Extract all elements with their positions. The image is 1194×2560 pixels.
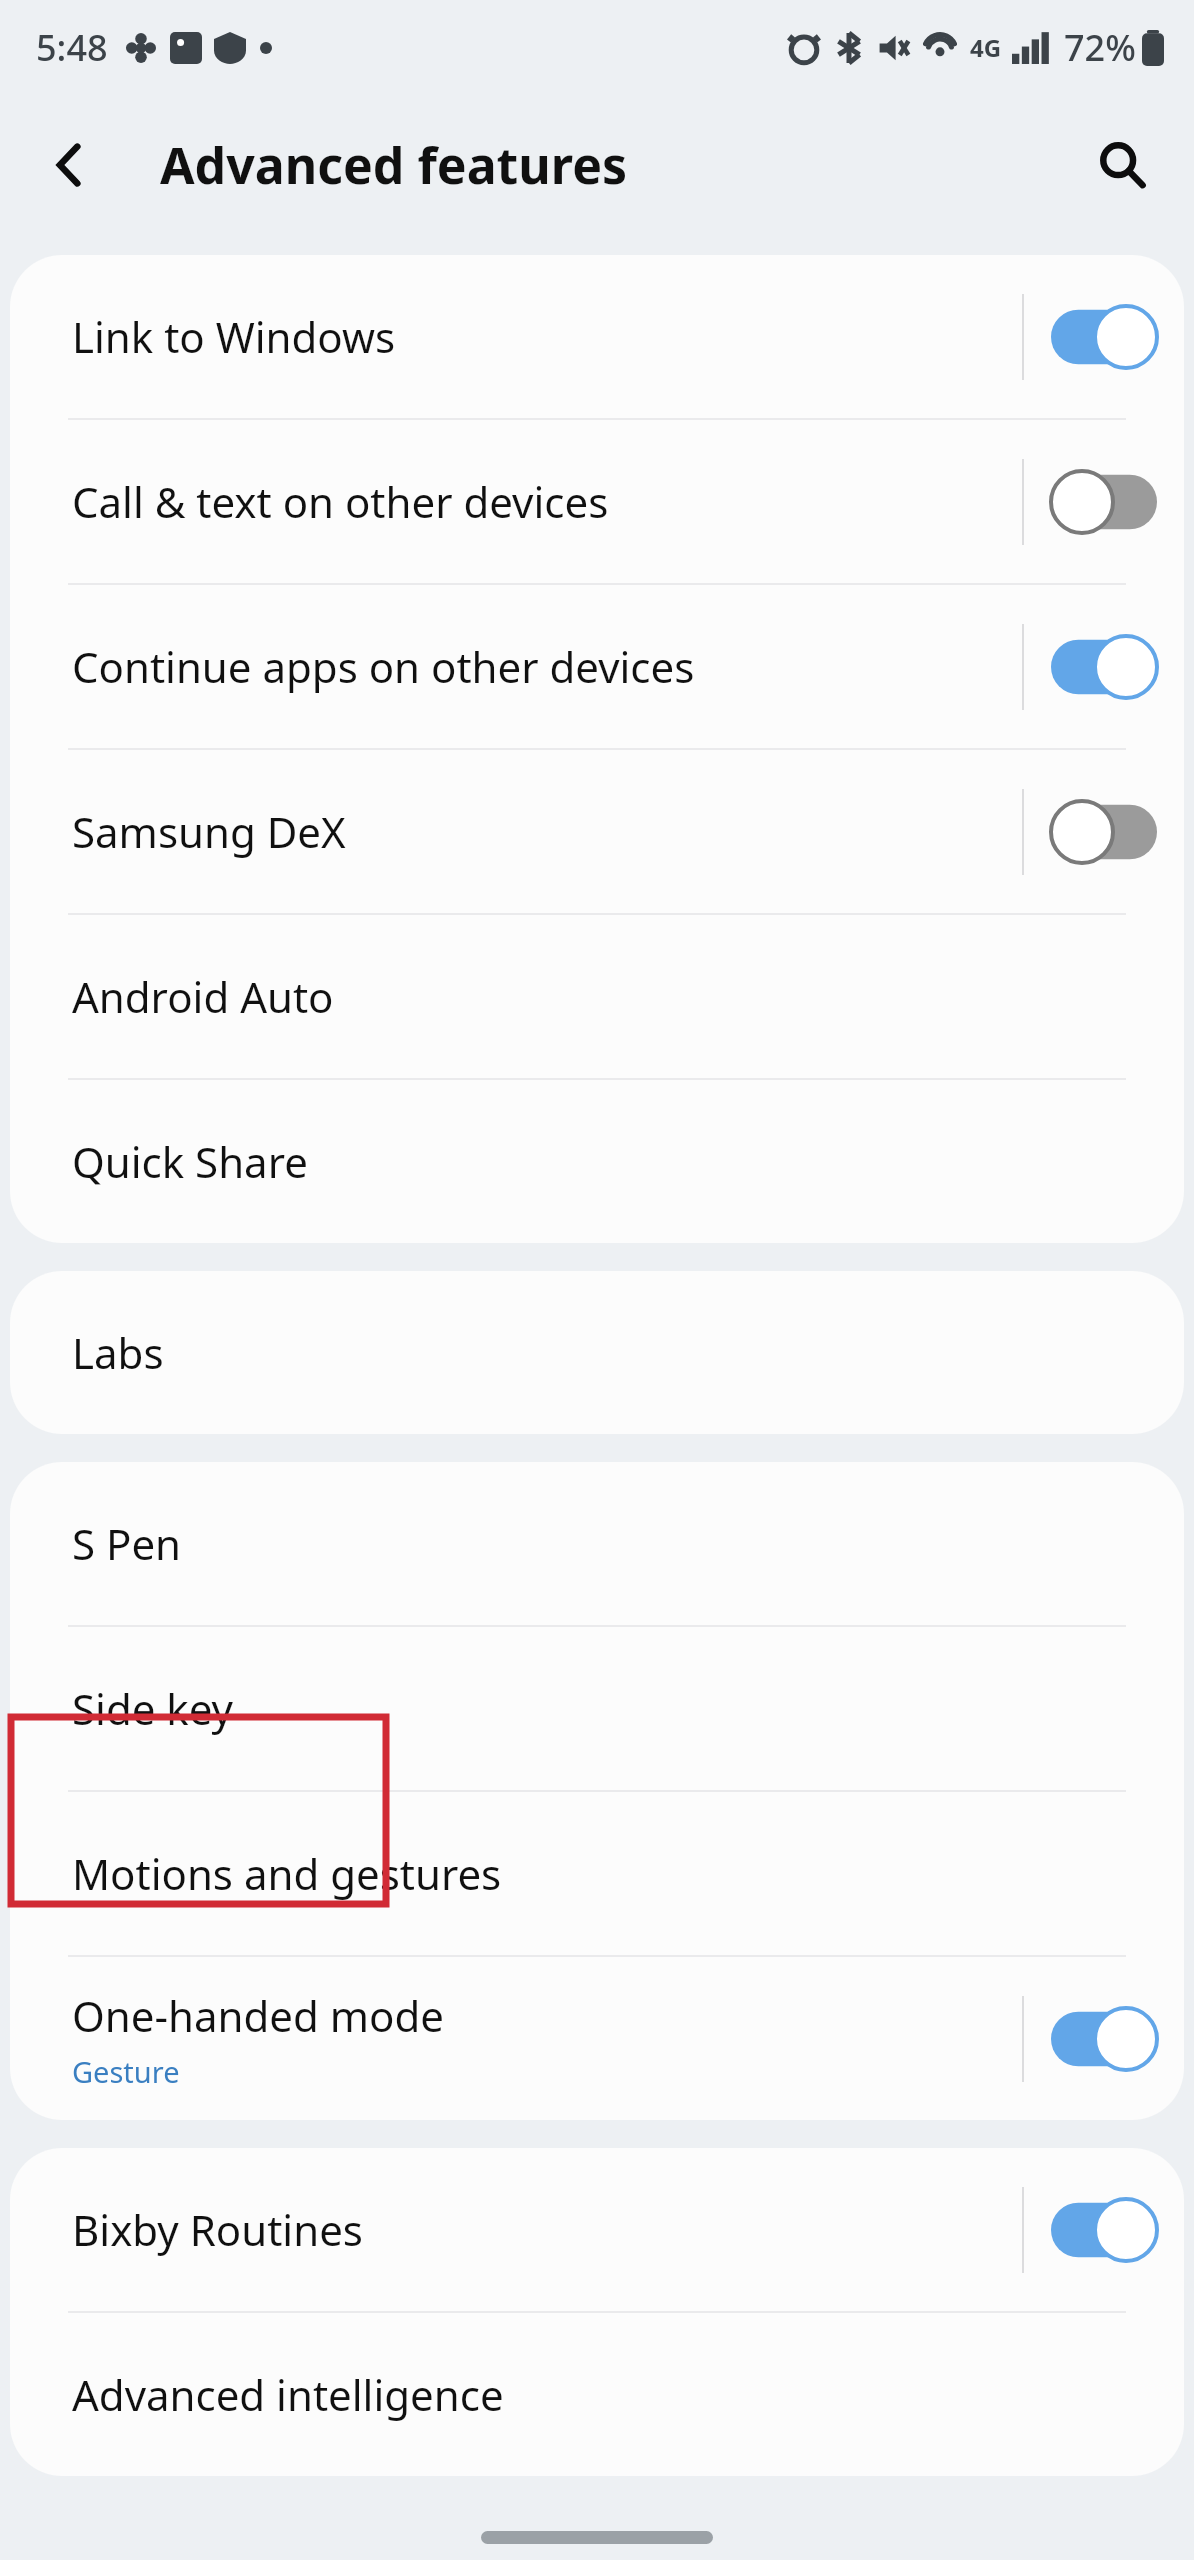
staticText: 72% <box>1064 23 1136 72</box>
button[interactable]: Call & text on other devices <box>10 420 1184 583</box>
button[interactable]: Link to Windows <box>10 255 1184 418</box>
button[interactable]: Samsung DeX off <box>1024 750 1184 913</box>
staticText: Advanced intelligence <box>72 2366 504 2423</box>
button[interactable]: Quick Share <box>10 1080 1184 1243</box>
staticText: Quick Share <box>72 1133 308 1190</box>
button[interactable]: S Pen <box>10 1462 1184 1625</box>
staticText: Link to Windows <box>72 308 396 365</box>
button[interactable]: Back <box>32 127 108 203</box>
button[interactable]: Motions and gestures <box>10 1792 1184 1955</box>
button[interactable]: Link to Windows on <box>1024 255 1184 418</box>
button[interactable]: Continue apps on other devices on <box>1024 585 1184 748</box>
staticText: 4G <box>970 31 1002 64</box>
staticText: S Pen <box>72 1515 182 1572</box>
button[interactable]: Bixby Routines on <box>1024 2148 1184 2311</box>
button[interactable]: Samsung DeX <box>10 750 1184 913</box>
button[interactable]: One-handed mode <box>10 1957 1184 2120</box>
button[interactable]: One-handed mode on <box>1024 1957 1184 2120</box>
button[interactable]: Android Auto <box>10 915 1184 1078</box>
staticText: Advanced features <box>160 131 628 199</box>
button[interactable]: Labs <box>10 1271 1184 1434</box>
button[interactable]: Advanced intelligence <box>10 2313 1184 2476</box>
staticText: Motions and gestures <box>72 1845 502 1902</box>
staticText: Call & text on other devices <box>72 473 609 530</box>
staticText: Android Auto <box>72 968 334 1025</box>
staticText: Samsung DeX <box>72 803 346 860</box>
staticText: 5:48 <box>36 23 108 72</box>
button[interactable]: Continue apps on other devices <box>10 585 1184 748</box>
staticText: Continue apps on other devices <box>72 638 695 695</box>
staticText: One-handed mode <box>72 1987 444 2044</box>
button[interactable]: Search <box>1080 123 1164 207</box>
button[interactable]: Bixby Routines <box>10 2148 1184 2311</box>
staticText: Bixby Routines <box>72 2201 363 2258</box>
staticText: Gesture <box>72 2052 180 2091</box>
staticText: Labs <box>72 1324 164 1381</box>
staticText: Side key <box>72 1680 234 1737</box>
button[interactable]: Call & text on other devices off <box>1024 420 1184 583</box>
button[interactable]: Side key <box>10 1627 1184 1790</box>
